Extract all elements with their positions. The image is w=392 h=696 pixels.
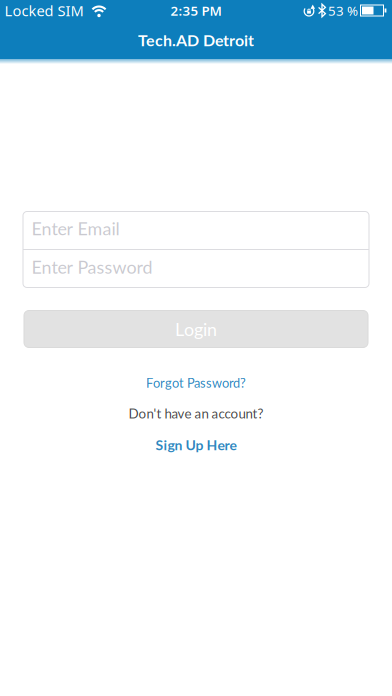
button[interactable]: Forgot Password?: [146, 375, 246, 390]
staticText: Login: [175, 318, 217, 340]
staticText: Locked SIM: [4, 0, 83, 20]
staticText: Don't have an account?: [128, 405, 263, 421]
button[interactable]: Enter Email: [23, 211, 369, 249]
staticText: Forgot Password?: [146, 375, 246, 390]
button[interactable]: Login: [24, 310, 368, 347]
staticText: Enter Password: [31, 256, 152, 277]
button[interactable]: Sign Up Here: [155, 436, 236, 453]
staticText: Sign Up Here: [155, 436, 236, 453]
staticText: Tech.AD Detroit: [138, 30, 254, 50]
staticText: 53 %: [328, 2, 358, 19]
staticText: 2:35 PM: [170, 2, 221, 19]
staticText: Enter Email: [31, 217, 119, 239]
button[interactable]: Enter Password: [23, 250, 369, 287]
